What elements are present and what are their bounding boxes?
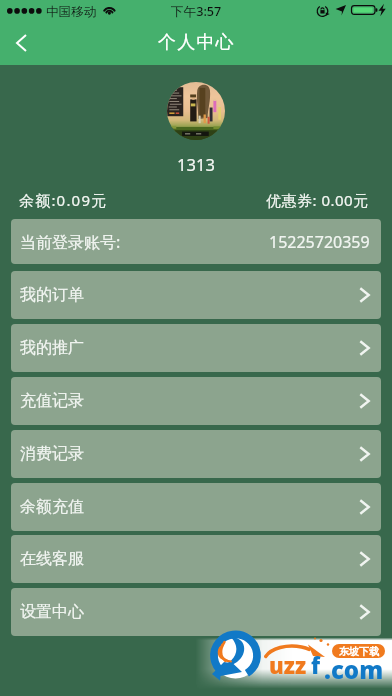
staticText: 设置中心 (20, 602, 84, 622)
staticText: 消费记录 (20, 444, 84, 464)
staticText: 东坡下载 (339, 645, 379, 658)
button[interactable]: 余额充值 (11, 483, 381, 531)
staticText: 中国移动 (46, 4, 97, 20)
staticText: 个人中心 (158, 31, 235, 54)
button[interactable]: 我的订单 (11, 271, 381, 319)
staticText: 当前登录账号: (20, 231, 121, 253)
button[interactable]: Back (2, 24, 40, 62)
staticText: uzz (269, 650, 307, 680)
staticText: f (311, 650, 321, 680)
staticText: 余额充值 (20, 497, 84, 517)
staticText: .com (324, 653, 384, 686)
staticText: 优惠券: 0.00元 (266, 190, 369, 210)
button[interactable]: 设置中心 (11, 588, 381, 636)
button[interactable]: 在线客服 (11, 535, 381, 583)
staticText: 我的推广 (20, 338, 84, 358)
staticText: 我的订单 (20, 285, 84, 305)
staticText: 充值记录 (20, 391, 84, 411)
button[interactable]: 消费记录 (11, 430, 381, 478)
staticText: 15225720359 (269, 231, 370, 253)
button[interactable]: 当前登录账号: (11, 219, 381, 264)
staticText: 1313 (0, 153, 392, 175)
button[interactable]: 我的推广 (11, 324, 381, 372)
staticText: 在线客服 (20, 549, 84, 569)
button[interactable]: 充值记录 (11, 377, 381, 425)
staticText: 下午3:57 (171, 3, 222, 20)
staticText: 余额:0.09元 (19, 190, 108, 210)
